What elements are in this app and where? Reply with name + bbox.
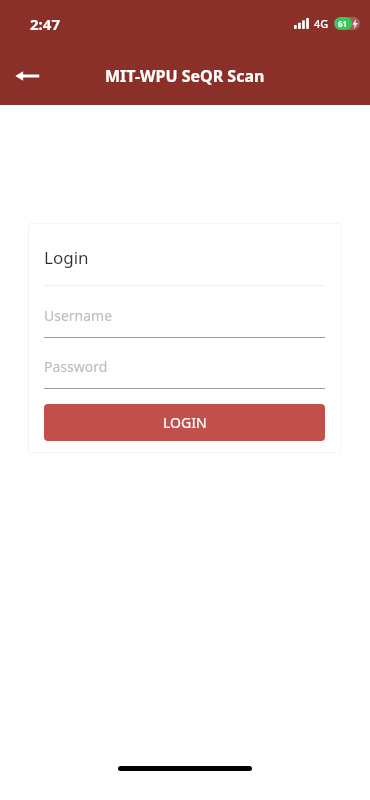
staticText: Username bbox=[44, 306, 113, 325]
button[interactable]: Password bbox=[44, 357, 325, 389]
staticText: 61 bbox=[338, 18, 348, 29]
button[interactable]: Username bbox=[44, 306, 325, 338]
staticText: LOGIN bbox=[163, 413, 207, 432]
button[interactable]: LOGIN bbox=[44, 404, 325, 441]
staticText: 2:47 bbox=[30, 14, 60, 34]
staticText: 4G bbox=[314, 16, 329, 31]
staticText: Password bbox=[44, 357, 108, 376]
staticText: MIT-WPU SeQR Scan bbox=[105, 65, 265, 87]
staticText: Login bbox=[44, 246, 89, 269]
button[interactable]: Back bbox=[5, 54, 49, 98]
